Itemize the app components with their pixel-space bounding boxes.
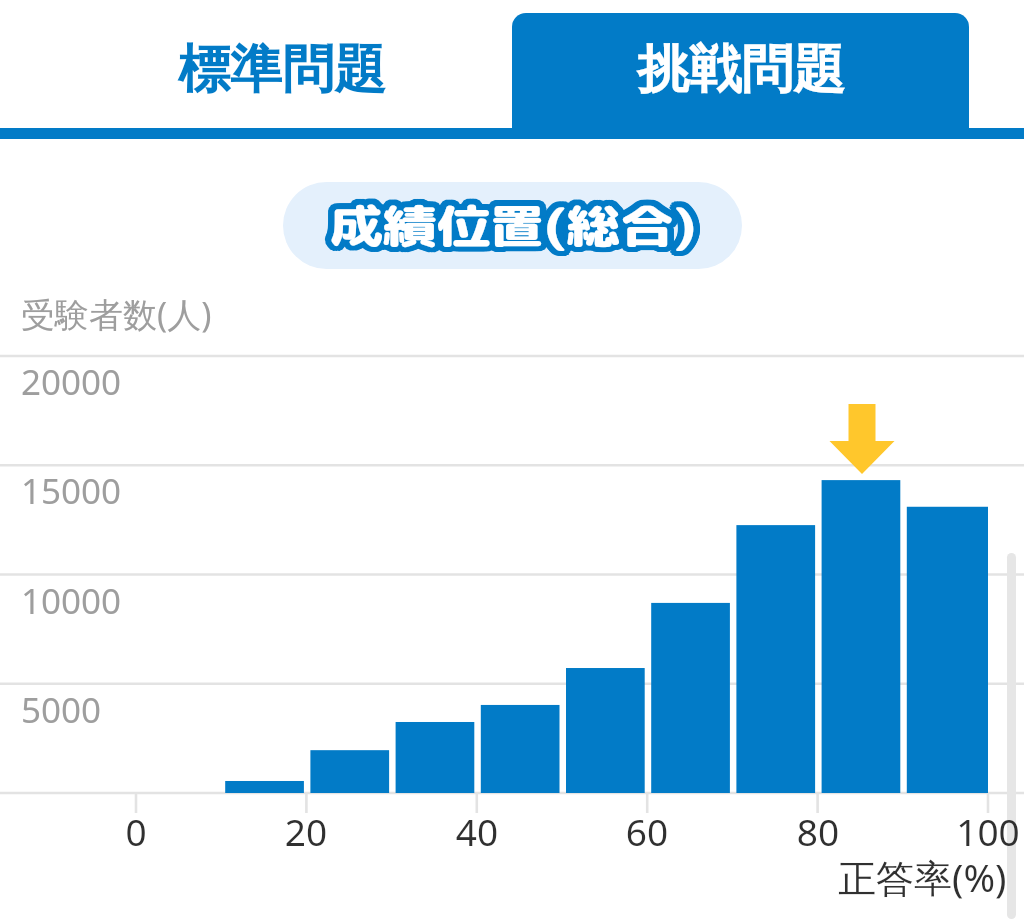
staticText: 80 — [768, 806, 868, 856]
button[interactable] — [283, 182, 742, 269]
staticText: 40 — [427, 806, 527, 856]
staticText: 20000 — [21, 358, 122, 406]
staticText: 15000 — [21, 467, 122, 515]
staticText: 受験者数(人) — [21, 291, 212, 337]
staticText: 5000 — [21, 686, 102, 734]
staticText: 10000 — [21, 577, 122, 625]
staticText: 20 — [256, 806, 356, 856]
staticText: 挑戦問題 — [637, 37, 845, 103]
button[interactable]: 標準問題 — [0, 0, 512, 128]
staticText: 60 — [597, 806, 697, 856]
staticText: 標準問題 — [178, 37, 386, 103]
staticText: 0 — [86, 806, 186, 856]
staticText: 正答率(%) — [838, 851, 1007, 903]
staticText: 100 — [938, 806, 1024, 856]
button[interactable]: 挑戦問題 — [512, 13, 969, 139]
